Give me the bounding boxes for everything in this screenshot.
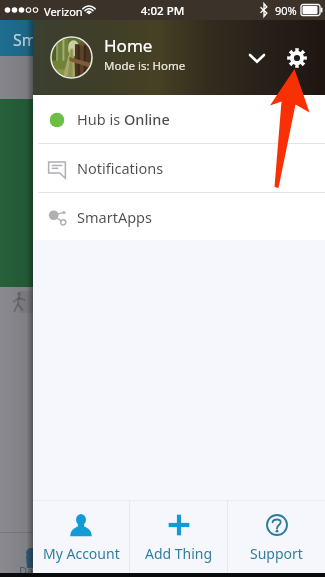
staticText: Notifications xyxy=(77,158,164,178)
staticText: Online xyxy=(124,109,170,129)
button[interactable]: Add Thing xyxy=(130,500,227,577)
button[interactable]: Expand xyxy=(239,40,275,76)
button[interactable]: Settings xyxy=(279,40,315,76)
staticText: SmartApps xyxy=(77,207,152,227)
staticText: Mode is: Home xyxy=(104,58,186,74)
button[interactable]: SmartApps xyxy=(33,193,325,240)
staticText: Add Thing xyxy=(145,544,213,563)
staticText: Das xyxy=(19,563,39,577)
button[interactable]: Hub is xyxy=(33,95,325,143)
staticText: 4:02 PM xyxy=(0,3,325,19)
staticText: Verizon xyxy=(44,4,83,19)
button[interactable]: Support xyxy=(228,500,325,577)
button[interactable]: Notifications xyxy=(33,144,325,192)
staticText: Home xyxy=(104,34,153,57)
staticText: My Account xyxy=(43,544,120,563)
staticText: SmartThings xyxy=(13,29,109,51)
staticText: Support xyxy=(250,544,303,563)
staticText: 90% xyxy=(275,3,297,18)
staticText: Hub is xyxy=(77,109,124,129)
button[interactable]: My Account xyxy=(33,500,129,577)
